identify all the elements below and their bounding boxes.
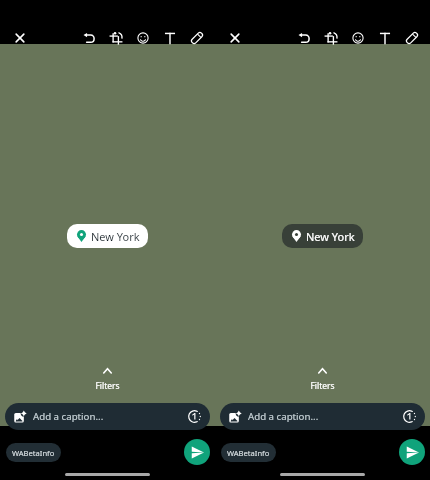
button[interactable]: Crop <box>317 24 344 51</box>
button[interactable]: Send <box>399 439 425 465</box>
button[interactable]: Filters <box>215 367 430 386</box>
button[interactable]: Add a caption... <box>5 403 210 430</box>
button[interactable]: Text <box>371 24 398 51</box>
button[interactable]: Add a caption... <box>220 403 425 430</box>
staticText: Add a caption... <box>248 410 403 423</box>
button[interactable]: Crop <box>102 24 129 51</box>
button[interactable]: Undo <box>75 24 102 51</box>
button[interactable]: Close <box>221 24 248 51</box>
button[interactable]: Draw <box>398 24 425 51</box>
button[interactable]: Send <box>184 439 210 465</box>
button[interactable]: Sticker <box>129 24 156 51</box>
staticText: Filters <box>310 380 335 392</box>
button[interactable]: New York <box>282 224 363 248</box>
button[interactable]: Draw <box>183 24 210 51</box>
button[interactable]: WABetaInfo <box>221 443 276 462</box>
button[interactable]: New York <box>67 224 148 248</box>
button[interactable]: Undo <box>290 24 317 51</box>
staticText: WABetaInfo <box>227 448 270 458</box>
button[interactable]: Text <box>156 24 183 51</box>
button[interactable]: Filters <box>0 367 215 386</box>
button[interactable]: Close <box>6 24 33 51</box>
staticText: New York <box>306 229 355 244</box>
button[interactable]: Sticker <box>344 24 371 51</box>
staticText: WABetaInfo <box>12 448 55 458</box>
button[interactable]: WABetaInfo <box>6 443 61 462</box>
staticText: Filters <box>95 380 120 392</box>
staticText: New York <box>91 229 140 244</box>
staticText: Add a caption... <box>33 410 188 423</box>
